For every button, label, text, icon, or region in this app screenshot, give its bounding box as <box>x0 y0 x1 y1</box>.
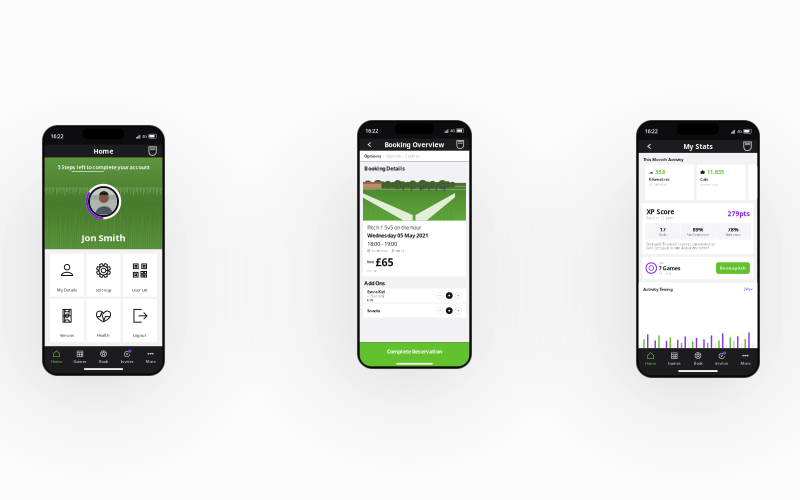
button[interactable]: Details <box>446 292 453 299</box>
staticText: 17 <box>660 226 666 233</box>
button[interactable]: Invites <box>710 352 734 366</box>
staticText: Pass Completion <box>686 233 709 237</box>
staticText: Settings <box>95 287 111 293</box>
button[interactable]: Games <box>68 350 92 364</box>
staticText: July <box>745 287 750 291</box>
button[interactable]: Details <box>446 307 453 314</box>
staticText: Home <box>645 361 656 366</box>
staticText: 18:00 - 19:00 <box>367 240 397 247</box>
staticText: Activity Timing <box>643 286 673 292</box>
button[interactable]: Home <box>45 350 68 364</box>
button[interactable]: Back <box>365 139 375 150</box>
button[interactable]: Profile <box>743 141 752 151</box>
staticText: Home <box>93 147 113 156</box>
staticText: Jon Smith <box>81 231 125 244</box>
button[interactable]: Games <box>662 352 686 366</box>
staticText: from <box>367 260 374 264</box>
staticText: 35.6 <box>655 168 665 176</box>
staticText: Options <box>364 153 381 159</box>
button[interactable]: Profile <box>148 146 157 156</box>
staticText: Invites <box>120 359 133 364</box>
staticText: Invites <box>715 361 728 366</box>
staticText: +3.1km vs Jun <box>648 183 667 187</box>
button[interactable]: Book <box>92 350 115 364</box>
staticText: Add Ons <box>364 280 385 287</box>
staticText: More <box>740 361 750 366</box>
staticText: Kilometres <box>648 177 669 182</box>
staticText: Complete Reservation <box>387 348 442 355</box>
staticText: 3 Steps left to complete your account <box>57 163 149 171</box>
staticText: Games <box>73 359 86 364</box>
staticText: 4G <box>737 129 742 134</box>
staticText: This Month Activity <box>643 157 683 162</box>
staticText: 4G <box>142 133 147 139</box>
staticText: 15 - July <box>659 272 671 275</box>
staticText: User QR <box>132 287 148 293</box>
button[interactable]: Log out <box>123 299 157 342</box>
staticText: More <box>145 359 155 364</box>
staticText: My Details <box>57 287 77 293</box>
button[interactable]: Settings <box>86 254 121 297</box>
staticText: £65 <box>375 255 393 269</box>
staticText: XP Score <box>646 207 674 216</box>
staticText: +1% of total <box>367 295 384 298</box>
button[interactable]: Decrease <box>437 292 443 299</box>
staticText: Runner's up <box>700 183 718 187</box>
button[interactable]: Book a pitch <box>716 262 750 274</box>
staticText: Extra Kid <box>367 289 385 294</box>
staticText: 16:22 <box>365 127 378 134</box>
staticText: Venues <box>60 333 74 338</box>
staticText: Confirm <box>405 153 420 159</box>
staticText: 11,835 <box>707 168 724 176</box>
staticText: Goals <box>659 233 666 237</box>
staticText: › <box>383 153 384 159</box>
staticText: Payment <box>386 153 401 159</box>
staticText: 16:22 <box>51 133 64 140</box>
button[interactable]: Profile <box>456 140 464 149</box>
button[interactable]: Venues <box>50 299 84 342</box>
button[interactable]: Increase <box>455 307 462 314</box>
staticText: 78% <box>728 226 739 233</box>
button[interactable]: More <box>139 350 162 364</box>
button[interactable]: Back <box>644 141 655 152</box>
staticText: Home <box>51 359 62 364</box>
staticText: June. Let's push to make August even bet… <box>646 246 709 250</box>
staticText: 89% <box>692 226 703 233</box>
staticText: Book <box>99 359 108 364</box>
staticText: My Stats <box>683 142 712 151</box>
staticText: 4G <box>450 128 455 133</box>
button[interactable]: My Details <box>50 254 84 297</box>
staticText: £10 <box>367 298 373 302</box>
staticText: Log out <box>133 333 147 338</box>
button[interactable]: Increase <box>455 292 462 299</box>
staticText: Snacks <box>367 308 380 313</box>
staticText: inc. Tax <box>367 269 376 273</box>
staticText: Games <box>668 361 681 366</box>
button[interactable]: Complete Reservation <box>360 342 469 366</box>
staticText: 60 Minutes <box>372 249 388 252</box>
staticText: Next <box>659 261 664 264</box>
button[interactable]: Health <box>86 299 121 342</box>
staticText: Based on 12 games <box>646 216 673 220</box>
staticText: Great work! This month is a huge improve… <box>646 243 715 246</box>
button[interactable]: Home <box>639 352 662 366</box>
staticText: Max 14 <box>396 249 405 252</box>
staticText: Booking Overview <box>384 140 444 149</box>
staticText: Pitch 1 5v5 on the hour <box>367 224 421 231</box>
button[interactable]: Decrease <box>437 307 443 314</box>
staticText: Health <box>97 333 110 338</box>
button[interactable]: Invites <box>115 350 139 364</box>
staticText: 279pts <box>728 209 750 218</box>
staticText: Tackles won <box>726 233 741 237</box>
staticText: 7 Games <box>659 264 681 272</box>
button[interactable]: User QR <box>123 254 157 297</box>
staticText: Book a pitch <box>720 265 746 271</box>
staticText: Book <box>693 361 702 366</box>
button[interactable]: Book <box>686 352 710 366</box>
staticText: 16:22 <box>645 128 658 135</box>
staticText: Cals <box>700 177 708 182</box>
staticText: Booking Details <box>364 165 405 172</box>
button[interactable]: More <box>734 352 757 366</box>
staticText: › <box>402 153 403 159</box>
staticText: Wednesday 05 May 2021 <box>367 232 428 239</box>
